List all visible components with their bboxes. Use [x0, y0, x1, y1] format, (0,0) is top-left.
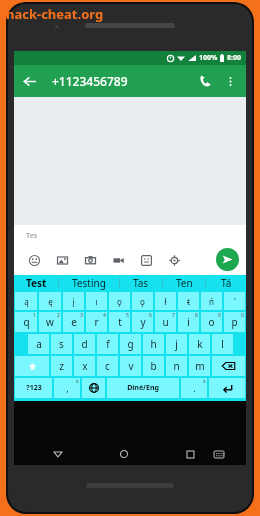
staticText: 1 [33, 312, 36, 319]
staticText: x [76, 378, 79, 385]
button[interactable]: Send [216, 248, 239, 271]
staticText: Tes [26, 230, 38, 240]
button[interactable]: a [28, 334, 49, 354]
button[interactable]: Enter [209, 378, 245, 398]
staticText: u [162, 315, 169, 329]
button[interactable]: , [54, 378, 80, 398]
staticText: s [59, 337, 64, 351]
button[interactable]: t [109, 312, 130, 332]
button[interactable]: q [15, 312, 37, 332]
staticText: m [195, 359, 205, 373]
button[interactable]: v [120, 356, 141, 376]
button[interactable]: į [63, 292, 84, 310]
staticText: ı [95, 296, 98, 307]
button[interactable]: ?123 [15, 378, 52, 398]
staticText: į [72, 296, 75, 307]
staticText: Test [26, 276, 47, 290]
staticText: q [23, 315, 30, 329]
button[interactable]: p [224, 312, 245, 332]
button[interactable]: Backspace [212, 356, 245, 376]
button[interactable]: f [97, 334, 118, 354]
staticText: o [208, 315, 215, 329]
staticText: l [221, 337, 224, 351]
button[interactable]: u [155, 312, 176, 332]
staticText: r [94, 315, 99, 329]
button[interactable]: i [178, 312, 199, 332]
staticText: b [150, 359, 157, 373]
button[interactable]: b [143, 356, 164, 376]
button[interactable]: Tá [206, 275, 246, 291]
button[interactable]: g [120, 334, 141, 354]
staticText: ' [234, 296, 236, 307]
button[interactable]: e [63, 312, 84, 332]
button[interactable]: Video [104, 246, 132, 274]
button[interactable]: Back [14, 66, 44, 96]
staticText: Testing [72, 276, 106, 290]
staticText: ę [48, 296, 53, 307]
button[interactable]: Emoji [20, 246, 48, 274]
staticText: g [127, 337, 134, 351]
staticText: x [82, 359, 88, 373]
button[interactable]: . [181, 378, 207, 398]
button[interactable]: ń [201, 292, 222, 310]
button[interactable]: Diné/Eng [107, 378, 179, 398]
button[interactable]: Keyboard [209, 444, 229, 464]
button[interactable]: s [51, 334, 72, 354]
button[interactable]: ' [224, 292, 245, 310]
button[interactable]: o [201, 312, 222, 332]
button[interactable]: ą [15, 292, 37, 310]
button[interactable]: Testing [59, 275, 119, 291]
button[interactable]: Call [191, 67, 219, 95]
button[interactable]: Shift [15, 356, 49, 376]
button[interactable]: ł [155, 292, 176, 310]
staticText: d [81, 337, 88, 351]
staticText: Ten [176, 276, 193, 290]
staticText: c [105, 359, 110, 373]
staticText: Diné/Eng [127, 383, 159, 393]
staticText: 8:00 [227, 53, 241, 63]
button[interactable]: k [189, 334, 210, 354]
button[interactable]: ǫ [109, 292, 130, 310]
button[interactable]: ǫ [132, 292, 153, 310]
button[interactable]: Back [48, 444, 68, 464]
button[interactable]: Sticker [132, 246, 160, 274]
staticText: 100% [199, 53, 218, 63]
staticText: k [197, 337, 203, 351]
button[interactable]: w [39, 312, 61, 332]
button[interactable]: d [74, 334, 95, 354]
staticText: ą [24, 296, 29, 307]
button[interactable]: Camera [76, 246, 104, 274]
staticText: , [66, 382, 69, 394]
button[interactable]: j [166, 334, 187, 354]
button[interactable]: y [132, 312, 153, 332]
button[interactable]: Tas [120, 275, 162, 291]
button[interactable]: Ten [163, 275, 205, 291]
staticText: w [46, 315, 54, 329]
button[interactable]: c [97, 356, 118, 376]
button[interactable]: z [51, 356, 72, 376]
button[interactable]: r [86, 312, 107, 332]
staticText: 2 [57, 312, 60, 319]
button[interactable]: h [143, 334, 164, 354]
button[interactable]: ę [39, 292, 61, 310]
button[interactable]: n [166, 356, 187, 376]
button[interactable]: l [212, 334, 233, 354]
staticText: Tá [221, 276, 232, 290]
staticText: 6 [149, 312, 152, 319]
button[interactable]: Change language [82, 378, 105, 398]
staticText: 3 [80, 312, 83, 319]
staticText: ǫ [117, 296, 122, 307]
button[interactable]: Recents [180, 444, 200, 464]
staticText: 8 [195, 312, 198, 319]
button[interactable]: x [74, 356, 95, 376]
button[interactable]: More options [219, 70, 241, 92]
button[interactable]: m [189, 356, 210, 376]
button[interactable]: Home [114, 444, 134, 464]
button[interactable]: ı [86, 292, 107, 310]
button[interactable]: ŧ [178, 292, 199, 310]
staticText: ŧ [187, 296, 190, 307]
button[interactable]: Location [160, 246, 188, 274]
button[interactable]: Test [14, 275, 58, 291]
button[interactable]: Gallery [48, 246, 76, 274]
staticText: 7 [172, 312, 175, 319]
